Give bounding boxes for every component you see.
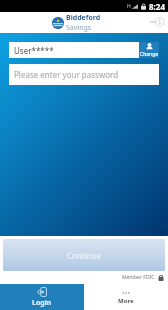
- staticText: Savings: [66, 23, 92, 33]
- staticText: Biddeford: [66, 13, 101, 23]
- staticText: Please enter your password: [14, 69, 119, 80]
- staticText: Member FDIC: [122, 274, 155, 281]
- staticText: 8:24: [149, 1, 165, 12]
- button[interactable]: Login: [0, 284, 84, 310]
- button[interactable]: Continue: [3, 239, 165, 271]
- staticText: Continue: [67, 250, 102, 261]
- staticText: More: [118, 297, 134, 305]
- button[interactable]: More: [84, 284, 168, 310]
- staticText: User*****: [14, 45, 54, 56]
- staticText: Change: [140, 51, 159, 58]
- button[interactable]: Change: [139, 42, 159, 58]
- staticText: H: [127, 3, 131, 10]
- button[interactable]: Rates: [147, 12, 168, 33]
- button[interactable]: User*****: [9, 42, 139, 58]
- staticText: Login: [32, 298, 52, 308]
- button[interactable]: Please enter your password: [9, 64, 159, 85]
